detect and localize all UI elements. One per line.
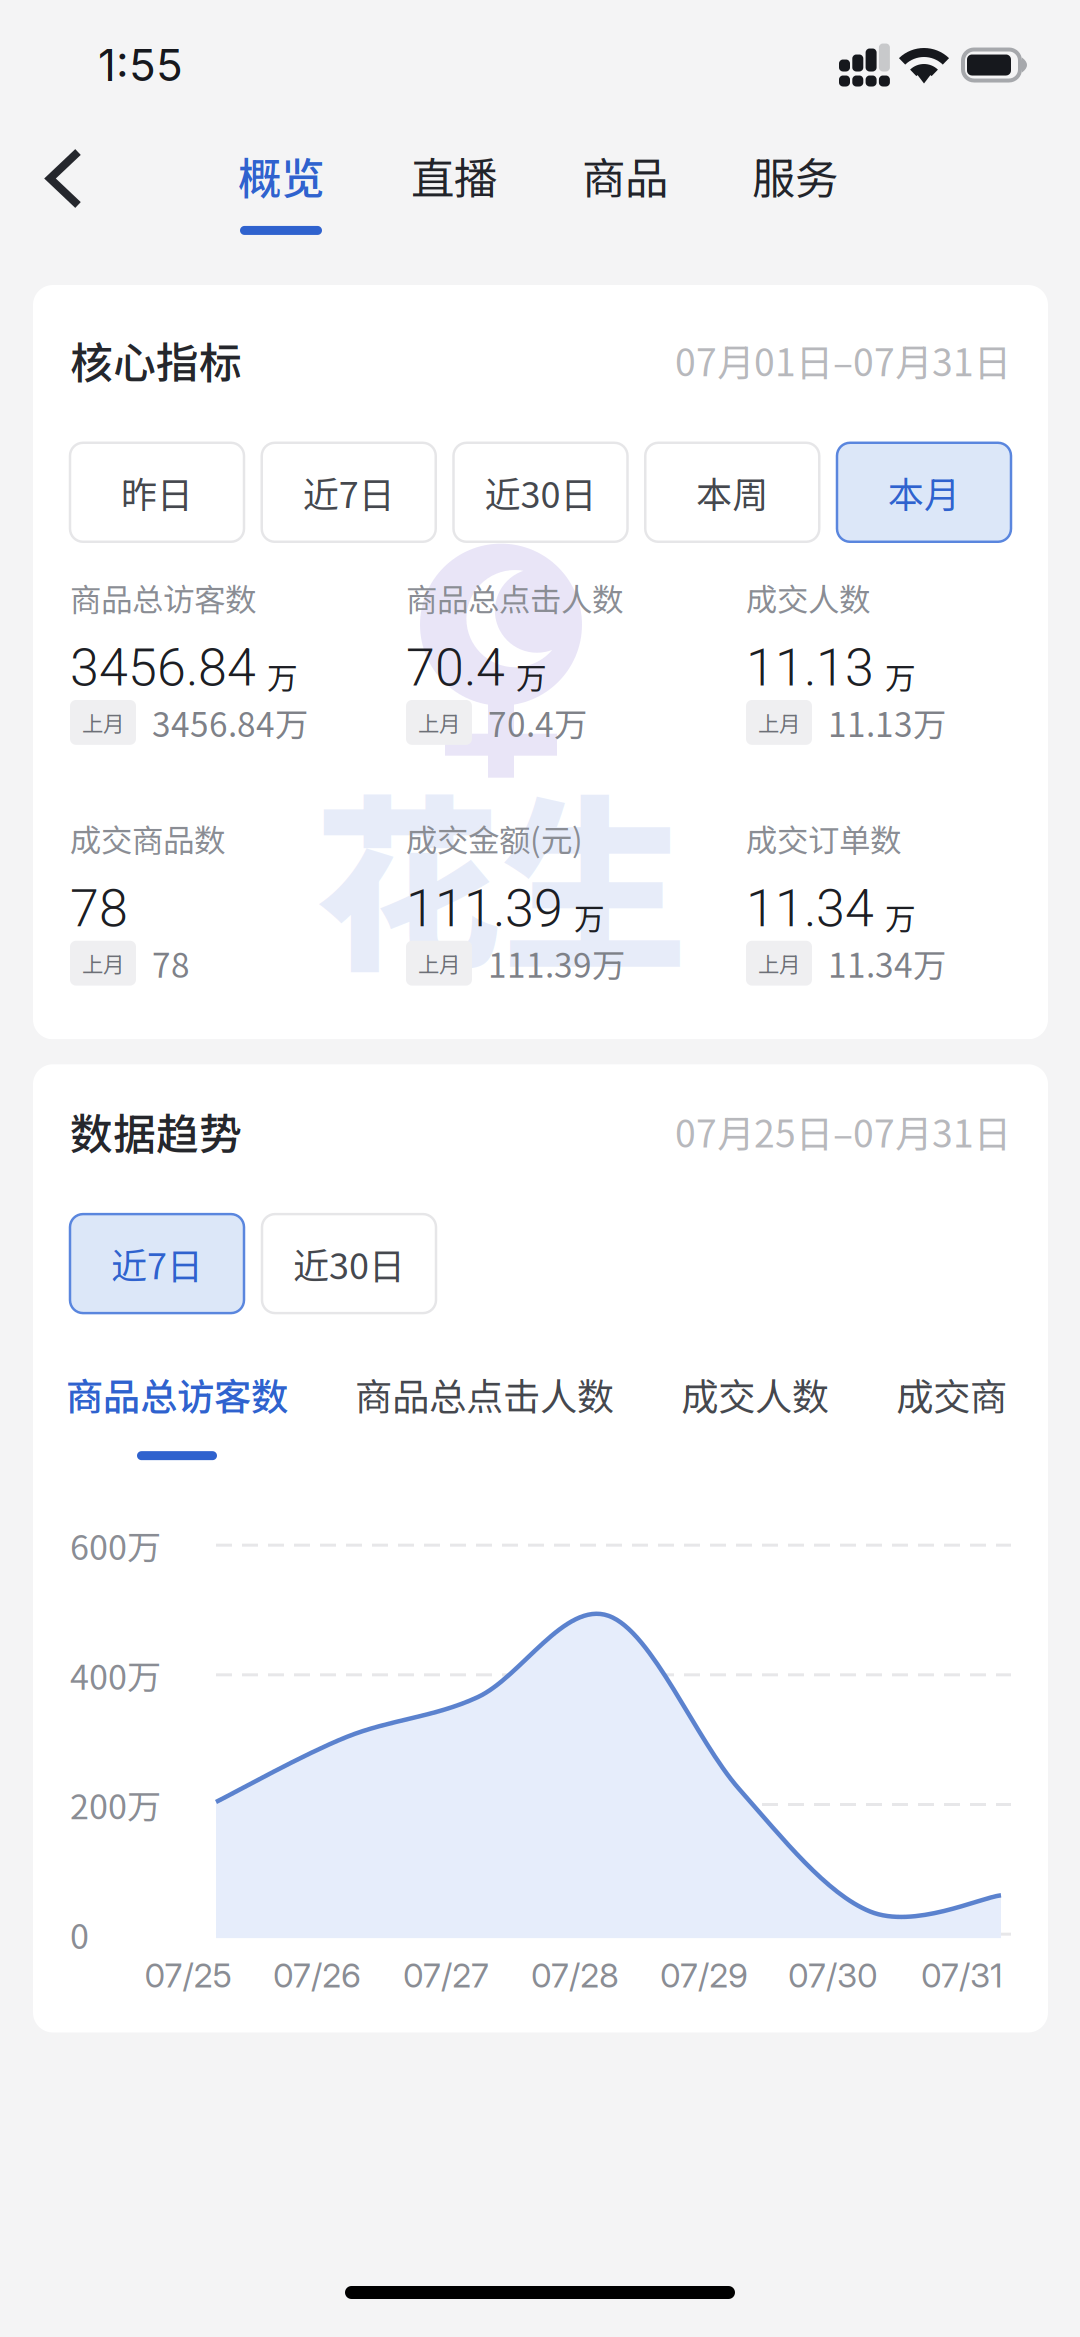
staticText: 成交金额(元) bbox=[406, 815, 583, 861]
staticText: 商品总访客数 bbox=[66, 1367, 288, 1421]
staticText: 商品总点击人数 bbox=[355, 1367, 614, 1421]
staticText: 数据趋势 bbox=[70, 1100, 242, 1162]
staticText: 07/29 bbox=[660, 1955, 748, 1995]
button[interactable]: 商品 bbox=[540, 130, 710, 285]
staticText: 上月 bbox=[418, 707, 460, 738]
button[interactable]: 商品总点击人数 bbox=[355, 1367, 614, 1460]
button[interactable]: 成交人数 bbox=[681, 1367, 829, 1460]
button[interactable]: 本周 bbox=[645, 443, 819, 542]
staticText: 成交订单数 bbox=[746, 815, 901, 861]
staticText: 07/28 bbox=[531, 1955, 619, 1995]
button[interactable]: 近7日 bbox=[262, 443, 436, 542]
staticText: 78 bbox=[152, 939, 190, 987]
staticText: 近7日 bbox=[111, 1237, 203, 1290]
staticText: 万 bbox=[574, 895, 605, 939]
staticText: 07/30 bbox=[788, 1955, 878, 1995]
staticText: 上月 bbox=[82, 948, 124, 979]
button[interactable]: 服务 bbox=[710, 130, 880, 285]
staticText: 1:55 bbox=[98, 38, 183, 92]
staticText: 服务 bbox=[752, 144, 838, 207]
staticText: 昨日 bbox=[121, 466, 193, 518]
staticText: 商品 bbox=[582, 144, 668, 207]
staticText: 近7日 bbox=[303, 466, 395, 518]
button[interactable]: 概览 bbox=[194, 130, 368, 285]
staticText: 本周 bbox=[696, 466, 768, 518]
staticText: 70.4 bbox=[406, 637, 505, 698]
staticText: 商品总点击人数 bbox=[406, 575, 623, 620]
staticText: 111.39万 bbox=[488, 939, 625, 987]
button[interactable]: 近7日 bbox=[70, 1214, 244, 1313]
staticText: 上月 bbox=[758, 948, 800, 979]
button[interactable]: 近30日 bbox=[453, 443, 627, 542]
staticText: 111.39 bbox=[406, 878, 563, 939]
staticText: 07/25 bbox=[144, 1955, 231, 1995]
staticText: 万 bbox=[516, 654, 547, 698]
staticText: 07/26 bbox=[273, 1955, 361, 1995]
staticText: 概览 bbox=[238, 144, 324, 207]
button[interactable]: 直播 bbox=[368, 130, 540, 285]
staticText: 3456.84万 bbox=[152, 698, 308, 747]
staticText: 11.34 bbox=[746, 878, 874, 939]
staticText: 成交人数 bbox=[681, 1367, 829, 1421]
button[interactable]: 商品总访客数 bbox=[66, 1367, 288, 1460]
button[interactable]: 昨日 bbox=[70, 443, 244, 542]
staticText: 成交商 bbox=[896, 1367, 1007, 1421]
button[interactable]: Back bbox=[0, 130, 194, 285]
staticText: 万 bbox=[885, 895, 916, 939]
staticText: 成交商品数 bbox=[70, 815, 225, 861]
staticText: 600万 bbox=[70, 1520, 161, 1570]
staticText: 上月 bbox=[758, 707, 800, 738]
staticText: 3456.84 bbox=[70, 637, 256, 698]
staticText: 近30日 bbox=[293, 1237, 405, 1290]
staticText: 0 bbox=[70, 1909, 89, 1959]
staticText: 万 bbox=[885, 654, 916, 698]
staticText: 上月 bbox=[82, 707, 124, 738]
button[interactable]: 成交商 bbox=[896, 1367, 1007, 1460]
staticText: 07/27 bbox=[403, 1955, 489, 1995]
staticText: 200万 bbox=[70, 1780, 161, 1829]
staticText: 400万 bbox=[70, 1650, 161, 1699]
staticText: 07月25日–07月31日 bbox=[675, 1104, 1011, 1158]
button[interactable]: 本月 bbox=[837, 443, 1011, 542]
staticText: 万 bbox=[267, 654, 298, 698]
staticText: 上月 bbox=[418, 948, 460, 979]
staticText: 直播 bbox=[411, 144, 497, 207]
staticText: 11.34万 bbox=[828, 939, 946, 987]
staticText: 70.4万 bbox=[488, 698, 587, 747]
staticText: 核心指标 bbox=[70, 329, 242, 391]
staticText: 78 bbox=[70, 878, 128, 939]
staticText: 07月01日–07月31日 bbox=[675, 333, 1011, 387]
button[interactable]: 近30日 bbox=[262, 1214, 436, 1313]
staticText: 本月 bbox=[888, 466, 960, 518]
staticText: 商品总访客数 bbox=[70, 575, 256, 620]
staticText: 近30日 bbox=[484, 466, 596, 518]
staticText: 成交人数 bbox=[746, 575, 870, 620]
staticText: 11.13万 bbox=[828, 698, 946, 747]
staticText: 07/31 bbox=[921, 1955, 1003, 1995]
staticText: 花生 bbox=[314, 738, 688, 1008]
staticText: 11.13 bbox=[746, 637, 874, 698]
